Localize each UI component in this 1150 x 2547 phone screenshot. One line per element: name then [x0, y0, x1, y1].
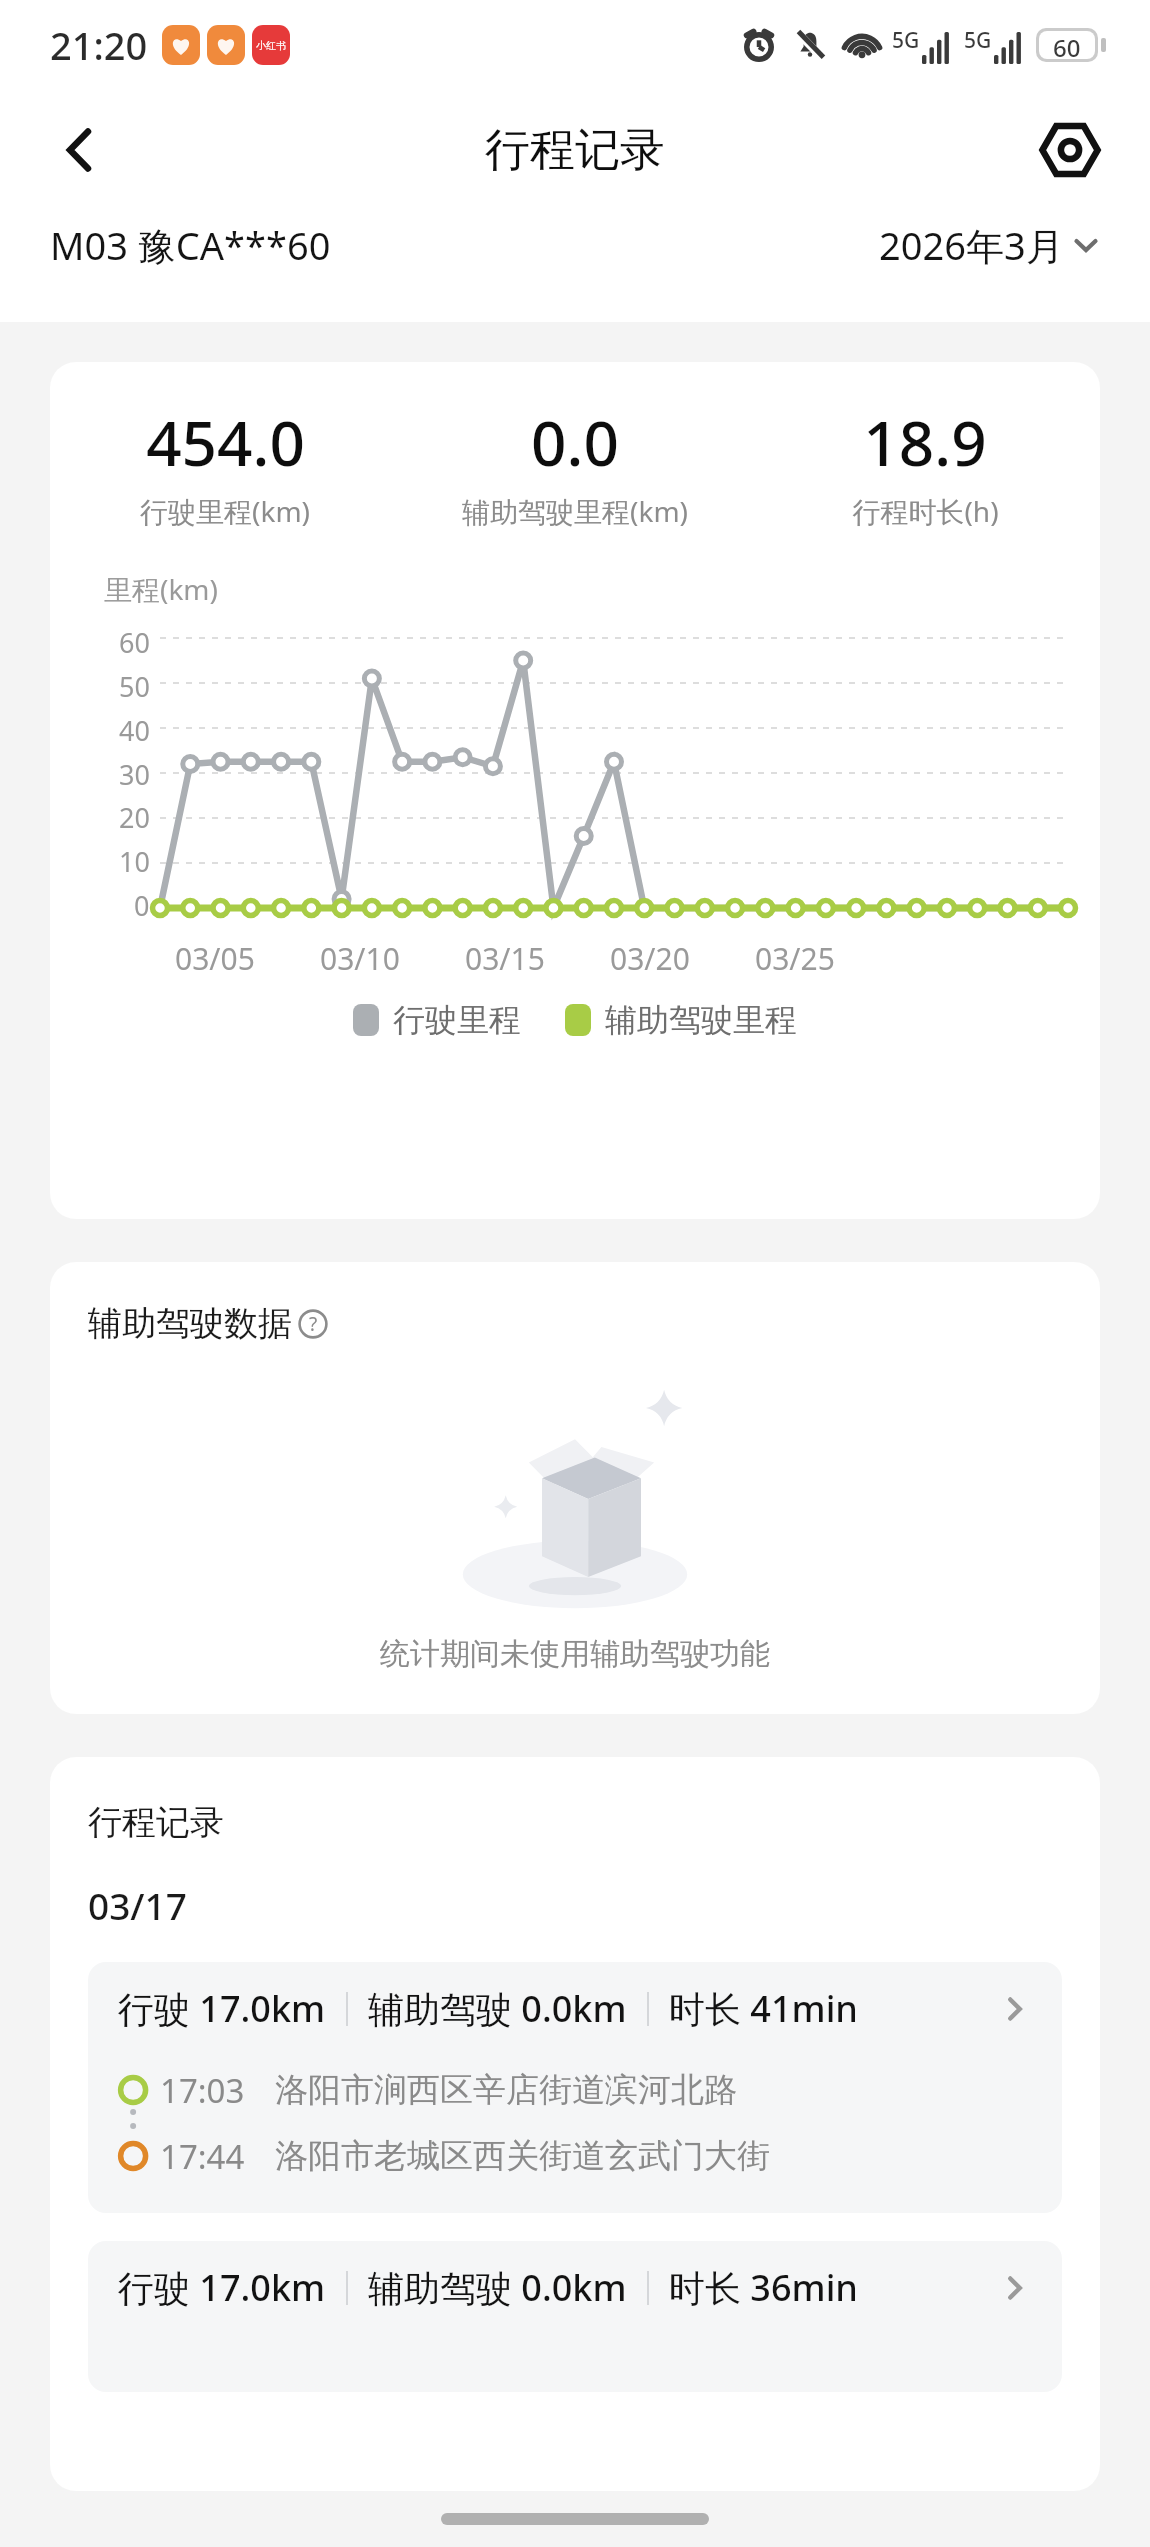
staticText: 03/05 [175, 938, 255, 978]
staticText: 辅助驾驶 0.0km [368, 2263, 627, 2312]
staticText: 03/20 [610, 938, 690, 978]
staticText: 30 [119, 756, 150, 793]
staticText: 10 [119, 843, 150, 880]
button[interactable]: Back [30, 100, 130, 200]
staticText: 行程时长(h) [852, 492, 999, 530]
staticText: 5G [964, 26, 992, 55]
staticText: 行驶里程 [393, 1000, 521, 1040]
button[interactable]: 2026年3月 [879, 219, 1100, 271]
staticText: 50 [119, 668, 150, 705]
staticText: 17:03 [160, 2068, 245, 2113]
button[interactable]: 行驶 17.0km [88, 1962, 1062, 2213]
staticText: 洛阳市老城区西关街道玄武门大街 [275, 2135, 770, 2177]
staticText: 辅助驾驶 0.0km [368, 1984, 627, 2033]
staticText: 5G [892, 26, 920, 55]
staticText: 60 [1053, 31, 1081, 59]
button[interactable]: Help about assisted driving data [298, 1309, 328, 1339]
staticText: 辅助驾驶数据 [88, 1302, 292, 1345]
staticText: 60 [119, 624, 150, 661]
staticText: 17:44 [160, 2134, 245, 2179]
staticText: M03 豫CA***60 [50, 219, 331, 271]
staticText: 时长 41min [669, 1984, 858, 2033]
staticText: 40 [119, 712, 150, 749]
button[interactable]: 行驶 17.0km [88, 2241, 1062, 2392]
staticText: 时长 36min [669, 2263, 858, 2312]
staticText: 辅助驾驶里程(km) [462, 492, 688, 530]
staticText: 里程(km) [104, 570, 218, 608]
staticText: 0 [134, 887, 150, 924]
staticText: 行驶里程(km) [140, 492, 310, 530]
staticText: 18.9 [863, 400, 987, 484]
staticText: ? [309, 1311, 318, 1337]
staticText: 行程记录 [485, 122, 665, 179]
staticText: 21:20 [50, 19, 148, 71]
staticText: 2026年3月 [879, 219, 1064, 271]
staticText: 小红书 [256, 39, 286, 52]
staticText: 行驶 17.0km [118, 1984, 326, 2033]
staticText: 20 [119, 799, 150, 836]
staticText: 洛阳市涧西区辛店街道滨河北路 [275, 2069, 737, 2111]
staticText: 0.0 [531, 400, 619, 484]
staticText: 统计期间未使用辅助驾驶功能 [380, 1635, 770, 1673]
staticText: 03/15 [465, 938, 545, 978]
staticText: 辅助驾驶里程 [605, 1000, 797, 1040]
staticText: 行驶 17.0km [118, 2263, 326, 2312]
staticText: 行程记录 [88, 1801, 224, 1844]
button[interactable]: Settings [1020, 100, 1120, 200]
staticText: 454.0 [146, 400, 305, 484]
staticText: 03/10 [320, 938, 400, 978]
staticText: 03/25 [755, 938, 835, 978]
staticText: 03/17 [88, 1880, 187, 1930]
